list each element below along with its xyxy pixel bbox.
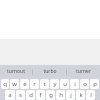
staticText: s: [19, 91, 22, 99]
button[interactable]: g: [46, 90, 55, 100]
button[interactable]: r: [30, 79, 39, 89]
staticText: l: [90, 91, 92, 99]
button[interactable]: e: [20, 79, 29, 89]
staticText: f: [39, 91, 42, 99]
staticText: j: [70, 91, 72, 99]
staticText: u: [63, 80, 67, 88]
button[interactable]: turnout: [0, 65, 32, 78]
staticText: p: [93, 80, 97, 88]
button[interactable]: o: [80, 79, 89, 89]
staticText: t: [43, 80, 46, 88]
staticText: turbo: [43, 68, 57, 75]
staticText: d: [29, 91, 33, 99]
button[interactable]: a: [5, 90, 15, 100]
button[interactable]: u: [60, 79, 69, 89]
button[interactable]: j: [66, 90, 75, 100]
button[interactable]: f: [36, 90, 45, 100]
button[interactable]: p: [90, 79, 99, 89]
button[interactable]: l: [86, 90, 95, 100]
button[interactable]: t: [40, 79, 49, 89]
staticText: r: [33, 80, 36, 88]
button[interactable]: i: [70, 79, 79, 89]
button[interactable]: y: [50, 79, 59, 89]
staticText: i: [74, 80, 76, 88]
staticText: h: [59, 91, 63, 99]
button[interactable]: d: [26, 90, 35, 100]
staticText: g: [49, 91, 53, 99]
staticText: e: [23, 80, 27, 88]
staticText: turnout: [7, 68, 25, 75]
button[interactable]: h: [56, 90, 65, 100]
button[interactable]: k: [76, 90, 85, 100]
button[interactable]: turner: [67, 65, 100, 78]
staticText: a: [8, 91, 12, 99]
staticText: turner: [76, 68, 91, 75]
staticText: q: [3, 80, 7, 88]
staticText: k: [79, 91, 83, 99]
staticText: y: [53, 80, 57, 88]
staticText: o: [83, 80, 87, 88]
button[interactable]: turbo: [33, 65, 66, 78]
button[interactable]: q: [1, 79, 9, 89]
button[interactable]: w: [10, 79, 19, 89]
staticText: w: [12, 80, 17, 88]
button[interactable]: s: [16, 90, 25, 100]
